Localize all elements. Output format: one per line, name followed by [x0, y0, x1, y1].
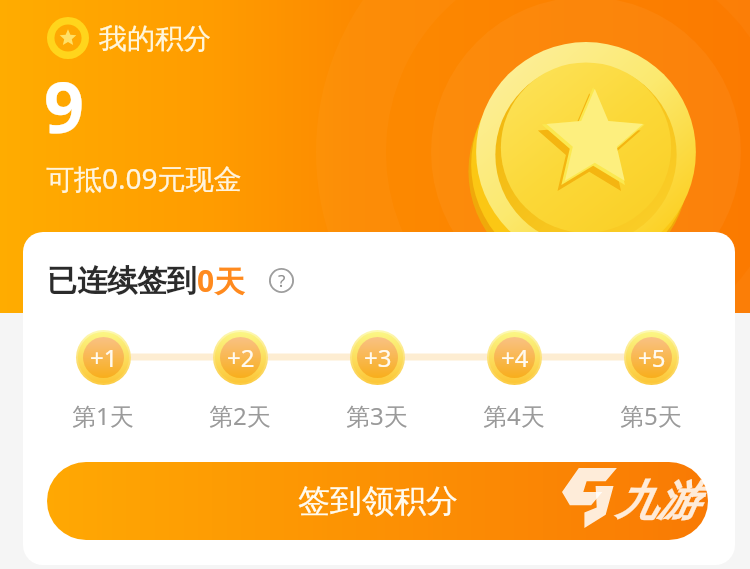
- staticText: +1: [90, 341, 118, 374]
- button[interactable]: +3: [337, 330, 417, 432]
- staticText: 第2天: [209, 399, 271, 432]
- staticText: 我的积分: [99, 21, 211, 56]
- staticText: 已连续签到: [47, 262, 197, 300]
- staticText: +4: [501, 341, 529, 374]
- staticText: 可抵0.09元现金: [46, 159, 242, 197]
- button[interactable]: 我的积分: [47, 17, 211, 59]
- staticText: 九游: [615, 475, 699, 528]
- button[interactable]: +2: [200, 330, 280, 432]
- staticText: 第5天: [620, 399, 682, 432]
- staticText: 第4天: [483, 399, 545, 432]
- staticText: 签到领积分: [298, 481, 458, 521]
- staticText: 9: [44, 58, 85, 153]
- button[interactable]: 签到领积分: [47, 462, 708, 540]
- staticText: ?: [278, 269, 286, 292]
- staticText: +3: [364, 341, 392, 374]
- button[interactable]: +5: [611, 330, 691, 432]
- button[interactable]: 帮助说明: [269, 268, 294, 293]
- staticText: 第1天: [72, 399, 134, 432]
- button[interactable]: +1: [63, 330, 143, 432]
- button[interactable]: +4: [474, 330, 554, 432]
- staticText: 第3天: [346, 399, 408, 432]
- staticText: 0天: [197, 260, 245, 301]
- staticText: +5: [638, 341, 666, 374]
- staticText: +2: [227, 341, 255, 374]
